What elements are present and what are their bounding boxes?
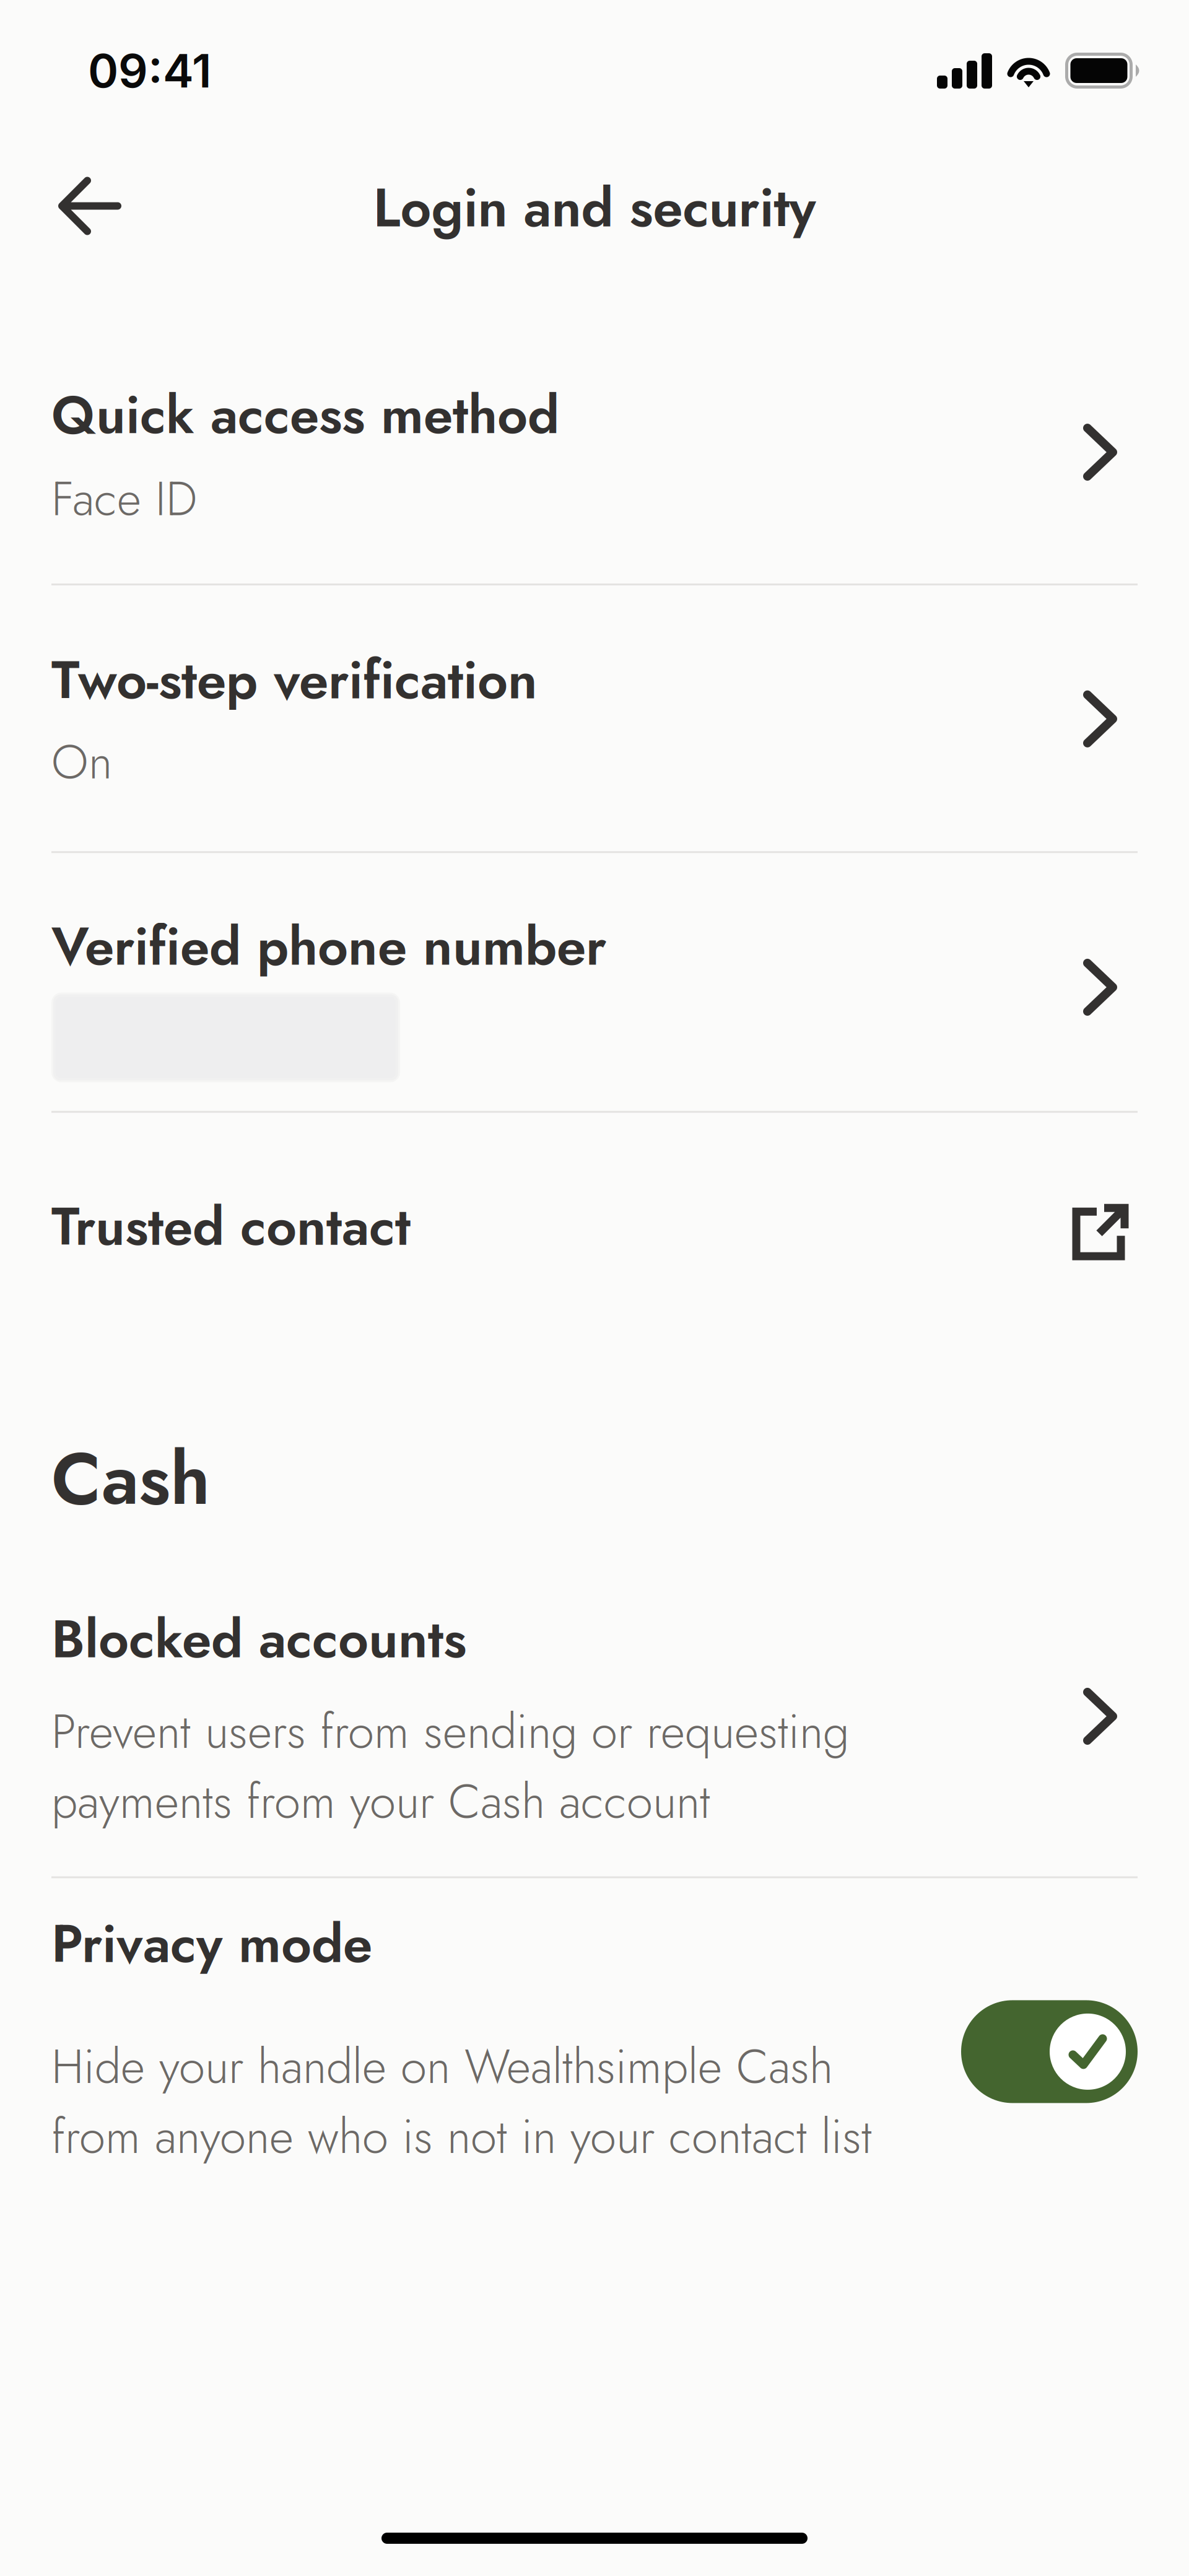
- button[interactable]: Trusted contact: [0, 1113, 1189, 1340]
- staticText: Face ID: [51, 465, 197, 533]
- staticText: Privacy mode: [51, 1905, 372, 1982]
- staticText: 09:41: [88, 43, 212, 99]
- staticText: On: [51, 728, 112, 796]
- button[interactable]: Back: [0, 160, 151, 255]
- button[interactable]: Blocked accounts: [0, 1601, 1189, 1876]
- staticText: Verified phone number: [51, 908, 606, 985]
- staticText: Trusted contact: [51, 1188, 411, 1265]
- staticText: Blocked accounts: [51, 1601, 466, 1677]
- staticText: Two-step verification: [51, 642, 538, 718]
- staticText: Hide your handle on Wealthsimple Cash fr…: [51, 2033, 872, 2170]
- staticText: Prevent users from sending or requesting…: [51, 1698, 849, 1835]
- staticText: Quick access method: [51, 377, 559, 453]
- button[interactable]: Two-step verification: [0, 585, 1189, 851]
- button[interactable]: Privacy mode: [0, 1878, 1189, 2198]
- staticText: Cash: [51, 1427, 210, 1531]
- button[interactable]: Verified phone number: [0, 853, 1189, 1111]
- button[interactable]: Quick access method: [0, 377, 1189, 584]
- staticText: Login and security: [373, 169, 816, 247]
